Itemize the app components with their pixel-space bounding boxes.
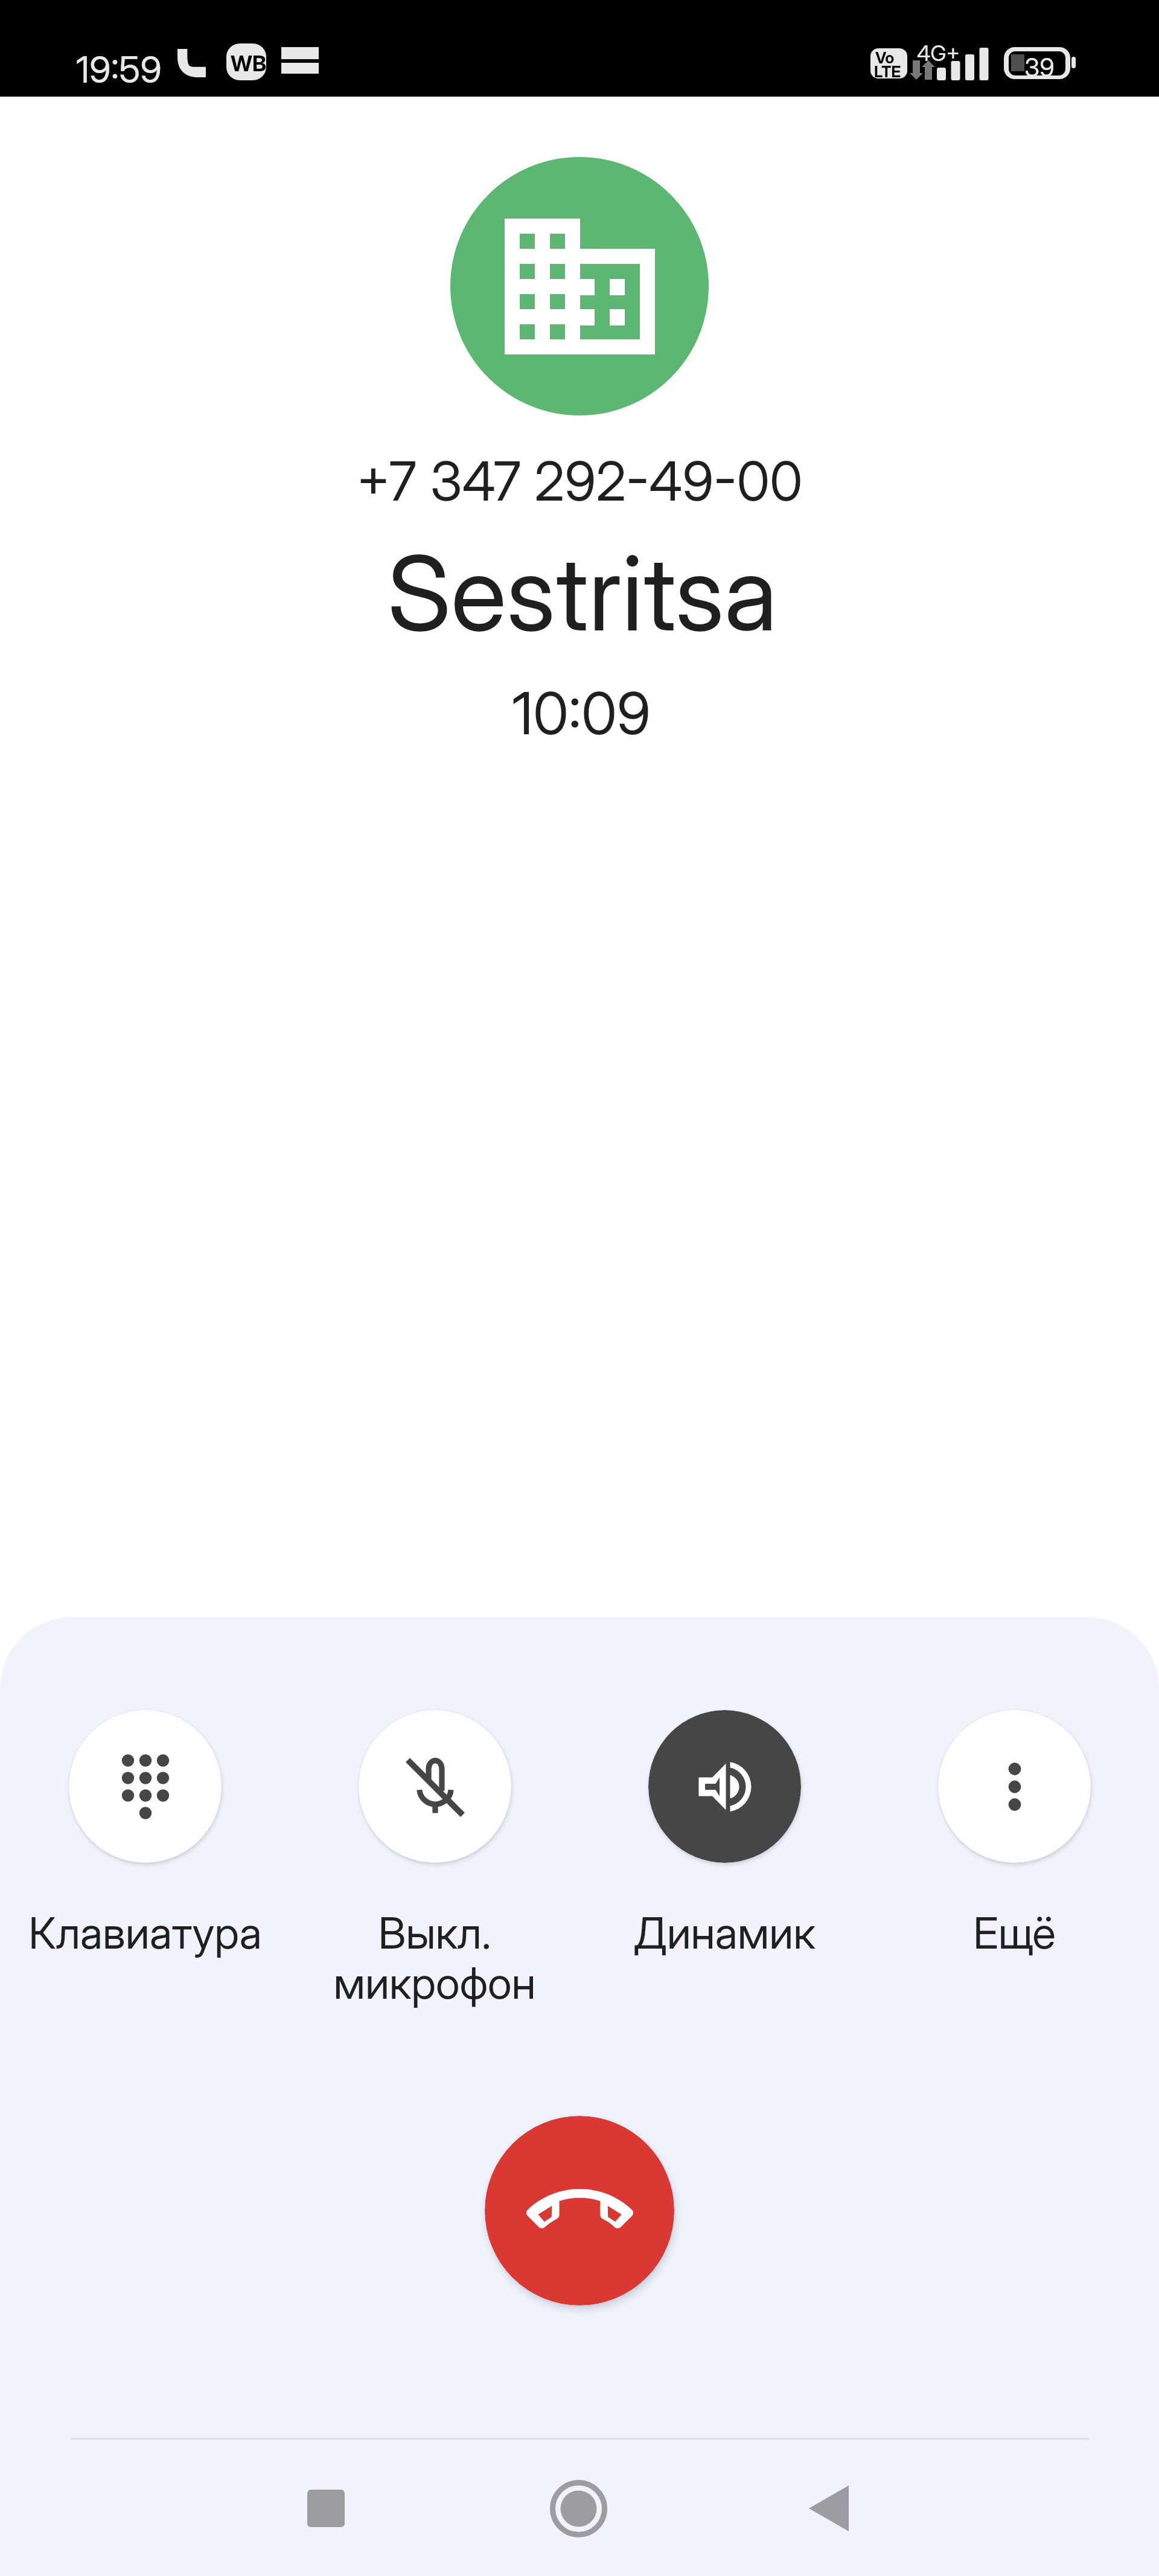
button[interactable]: Home — [524, 2454, 633, 2563]
staticText: WB — [231, 50, 267, 77]
button[interactable]: Back — [774, 2454, 883, 2563]
button[interactable]: Recent apps — [272, 2454, 380, 2563]
staticText: LTE — [874, 62, 901, 81]
staticText: Динамик — [633, 1906, 816, 1959]
staticText: 10:09 — [512, 678, 651, 748]
button[interactable]: Клавиатура — [0, 1710, 290, 1959]
staticText: Клавиатура — [28, 1906, 262, 1959]
staticText: 4G+ — [917, 40, 960, 66]
staticText: Sestritsa — [388, 530, 777, 655]
staticText: 39 — [1024, 52, 1055, 83]
button[interactable]: End call — [485, 2116, 674, 2305]
staticText: 19:59 — [76, 47, 162, 92]
staticText: Выкл. микрофон — [333, 1906, 536, 2010]
staticText: Ещё — [973, 1906, 1056, 1959]
button[interactable]: Выкл. микрофон — [290, 1710, 579, 2010]
button[interactable]: Динамик — [579, 1710, 869, 1959]
staticText: Vo — [875, 48, 895, 67]
staticText: +7 347 292-49-00 — [356, 449, 803, 514]
button[interactable]: Ещё — [869, 1710, 1159, 1959]
